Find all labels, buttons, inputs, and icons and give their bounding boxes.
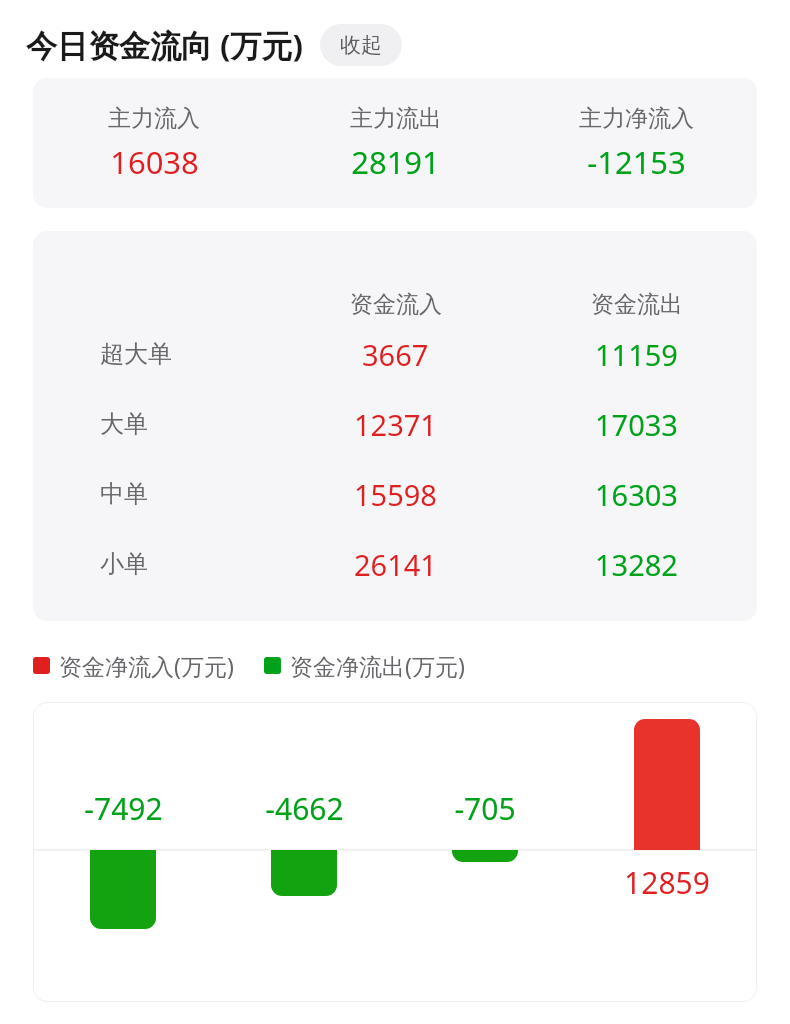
staticText: -7492 (84, 788, 163, 829)
staticText: 16303 (595, 475, 678, 514)
staticText: 17033 (595, 405, 678, 444)
staticText: 资金净流入(万元) (59, 650, 234, 681)
staticText: 资金流出 (591, 290, 683, 319)
staticText: 中单 (100, 479, 148, 509)
staticText: 3667 (362, 335, 429, 374)
staticText: 超大单 (100, 339, 172, 369)
button[interactable]: 主力流入 (33, 78, 757, 208)
staticText: 11159 (595, 335, 678, 374)
button[interactable]: 大单 (33, 389, 757, 459)
button[interactable]: 中单 (33, 459, 757, 529)
staticText: 28191 (351, 141, 440, 183)
staticText: 资金净流出(万元) (290, 650, 465, 681)
staticText: -705 (454, 788, 516, 829)
staticText: -4662 (265, 788, 344, 829)
staticText: 今日资金流向 (万元) (26, 24, 304, 66)
staticText: 15598 (354, 475, 437, 514)
button[interactable]: 小单 (33, 529, 757, 599)
staticText: 13282 (595, 545, 678, 584)
staticText: 12859 (624, 862, 710, 903)
staticText: 收起 (340, 32, 382, 58)
staticText: 主力流出 (350, 104, 442, 133)
staticText: 资金流入 (350, 290, 442, 319)
button[interactable]: 收起 (320, 24, 402, 66)
staticText: 主力流入 (108, 104, 200, 133)
button[interactable]: -7492 (33, 702, 757, 1002)
staticText: 大单 (100, 409, 148, 439)
staticText: 主力净流入 (579, 104, 694, 133)
button[interactable]: 超大单 (33, 319, 757, 389)
staticText: 12371 (354, 405, 437, 444)
staticText: -12153 (587, 141, 686, 183)
staticText: 26141 (354, 545, 437, 584)
staticText: 16038 (110, 141, 199, 183)
staticText: 小单 (100, 549, 148, 579)
